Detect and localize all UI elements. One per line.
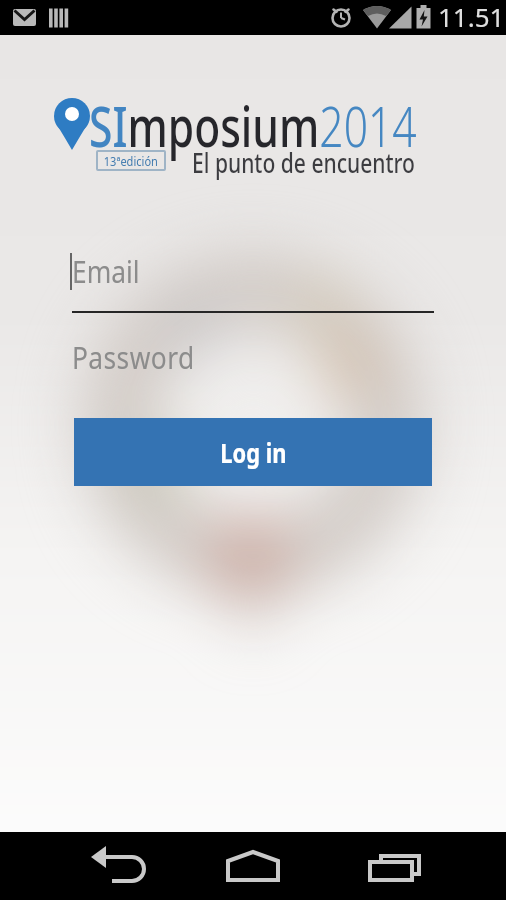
staticText: Log in [220, 435, 287, 470]
button[interactable]: Password [70, 333, 434, 388]
staticText: Email [72, 250, 140, 292]
button[interactable]: Log in [74, 418, 432, 486]
button[interactable] [218, 832, 288, 900]
button[interactable] [83, 832, 153, 900]
staticText: 13ªedición [104, 152, 158, 170]
button[interactable] [360, 832, 430, 900]
staticText: El punto de encuentro [192, 144, 415, 181]
staticText: 11.51 [438, 0, 505, 34]
staticText: Password [72, 336, 195, 378]
button[interactable]: Email [70, 243, 434, 313]
staticText: SImposium2014 [89, 87, 417, 163]
